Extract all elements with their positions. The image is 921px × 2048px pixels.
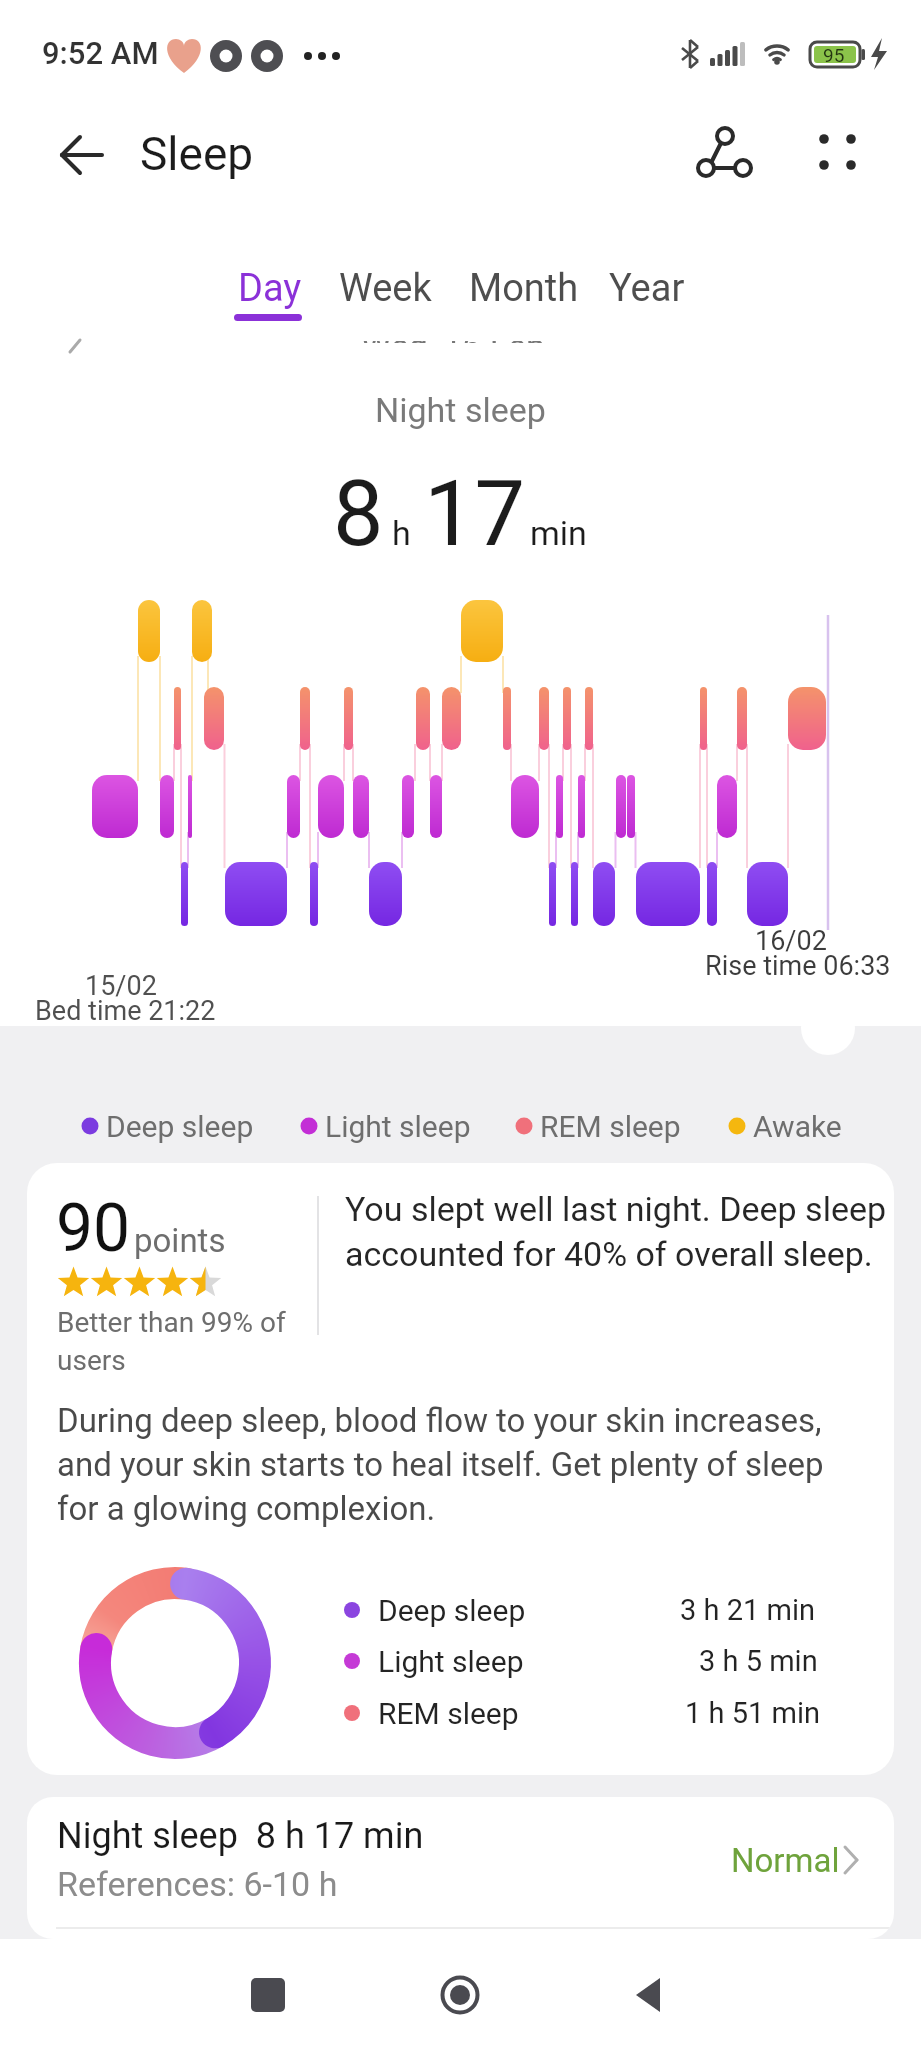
staticText: Day bbox=[238, 266, 302, 311]
staticText: Better than 99% of bbox=[57, 1306, 286, 1339]
staticText: 17 bbox=[424, 462, 526, 567]
staticText: 3 h 21 min bbox=[680, 1593, 815, 1627]
staticText: Deep sleep bbox=[106, 1109, 254, 1144]
staticText: points bbox=[134, 1221, 226, 1260]
button[interactable] bbox=[612, 1958, 688, 2034]
staticText: 95 bbox=[823, 44, 845, 66]
button[interactable] bbox=[230, 1958, 306, 2034]
staticText: Sleep bbox=[140, 127, 254, 181]
staticText: users bbox=[57, 1344, 126, 1377]
staticText: Year bbox=[609, 266, 685, 311]
button[interactable]: Night sleep 8 h 17 min bbox=[27, 1797, 894, 1939]
staticText: Rise time 06:33 bbox=[705, 950, 891, 982]
button[interactable] bbox=[805, 120, 875, 185]
staticText: 8 bbox=[333, 462, 384, 567]
staticText: Bed time 21:22 bbox=[35, 995, 216, 1027]
staticText: Awake bbox=[753, 1109, 842, 1144]
button[interactable] bbox=[685, 115, 765, 190]
staticText: Normal bbox=[731, 1841, 840, 1880]
staticText: During deep sleep, blood flow to your sk… bbox=[57, 1401, 824, 1528]
staticText: REM sleep bbox=[540, 1109, 681, 1144]
staticText: 9:52 AM bbox=[42, 35, 159, 71]
staticText: Night sleep 8 h 17 min bbox=[57, 1815, 424, 1857]
staticText: 3 h 5 min bbox=[699, 1644, 818, 1678]
staticText: h bbox=[392, 513, 411, 553]
staticText: References: 6-10 h bbox=[57, 1864, 338, 1904]
staticText: 16/02 bbox=[755, 925, 827, 957]
staticText: 15/02 bbox=[85, 970, 157, 1002]
staticText: Deep sleep bbox=[378, 1593, 526, 1628]
button[interactable]: 90 bbox=[27, 1163, 894, 1775]
staticText: 1 h 51 min bbox=[685, 1696, 820, 1730]
button[interactable] bbox=[422, 1958, 498, 2034]
staticText: Night sleep bbox=[375, 390, 546, 430]
staticText: 90 bbox=[56, 1190, 131, 1267]
staticText: Light sleep bbox=[325, 1109, 471, 1144]
staticText: Light sleep bbox=[378, 1644, 524, 1679]
button[interactable]: Day bbox=[220, 248, 320, 324]
button[interactable]: Year bbox=[595, 248, 700, 324]
staticText: Wed, 16 Feb bbox=[361, 341, 546, 343]
staticText: REM sleep bbox=[378, 1696, 519, 1731]
button[interactable]: Week bbox=[325, 248, 435, 324]
staticText: You slept well last night. Deep sleep ac… bbox=[345, 1189, 887, 1274]
button[interactable]: Month bbox=[455, 248, 580, 324]
staticText: min bbox=[530, 513, 587, 553]
staticText: Month bbox=[469, 266, 579, 311]
staticText: Week bbox=[339, 266, 432, 311]
button[interactable] bbox=[40, 120, 120, 190]
